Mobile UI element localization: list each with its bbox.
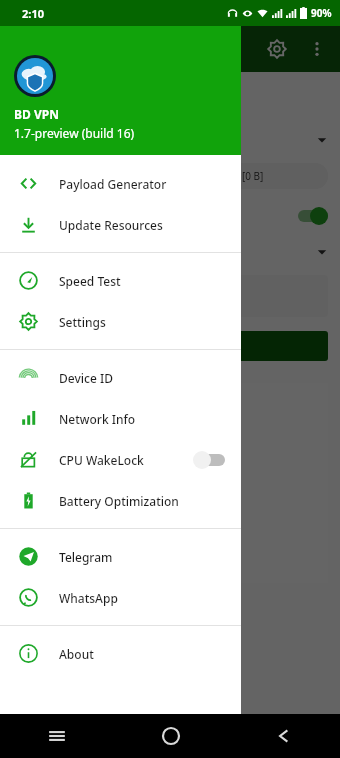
button[interactable]: CPU WakeLock — [0, 439, 241, 480]
button[interactable]: Settings — [266, 38, 288, 60]
button[interactable]: Back — [270, 722, 298, 750]
button[interactable]: Settings — [0, 301, 241, 342]
staticText: LOG — [12, 84, 35, 99]
button[interactable]: Update Resources — [0, 204, 241, 245]
staticText: 2:10 — [22, 6, 44, 21]
staticText: Network Info — [59, 411, 227, 427]
staticText: CUSTOM SETUP — [12, 209, 292, 224]
button[interactable]: Payload Generator — [0, 163, 241, 204]
button[interactable]: Recent apps — [43, 722, 71, 750]
staticText: Telegram — [59, 549, 227, 565]
button[interactable]: Device ID — [0, 357, 241, 398]
button[interactable]: Speed Test — [0, 260, 241, 301]
staticText: Settings — [59, 314, 227, 330]
button[interactable]: Home — [157, 722, 185, 750]
button[interactable]: Telegram — [0, 536, 241, 577]
staticText: [0 B] — [242, 169, 264, 183]
staticText: Device ID — [59, 370, 227, 386]
button[interactable]: CPU WakeLock toggle — [193, 450, 227, 470]
staticText: CPU WakeLock — [59, 452, 193, 468]
button[interactable]: Battery Optimization — [0, 480, 241, 521]
staticText: 300x250 — [142, 479, 198, 498]
staticText: WhatsApp — [59, 590, 227, 606]
staticText: Update Resources — [59, 217, 227, 233]
staticText: About — [59, 646, 227, 662]
staticText: BD VPN — [14, 106, 59, 122]
staticText: 90% — [311, 6, 332, 20]
staticText: Payload Generator — [59, 176, 227, 192]
staticText: 1.7-preview (build 16) — [14, 125, 135, 141]
button[interactable]: Network Info — [0, 398, 241, 439]
button[interactable]: More options — [306, 38, 328, 60]
staticText: Speed Test — [59, 273, 227, 289]
button[interactable]: WhatsApp — [0, 577, 241, 618]
button[interactable]: About — [0, 633, 241, 674]
staticText: Battery Optimization — [59, 493, 227, 509]
